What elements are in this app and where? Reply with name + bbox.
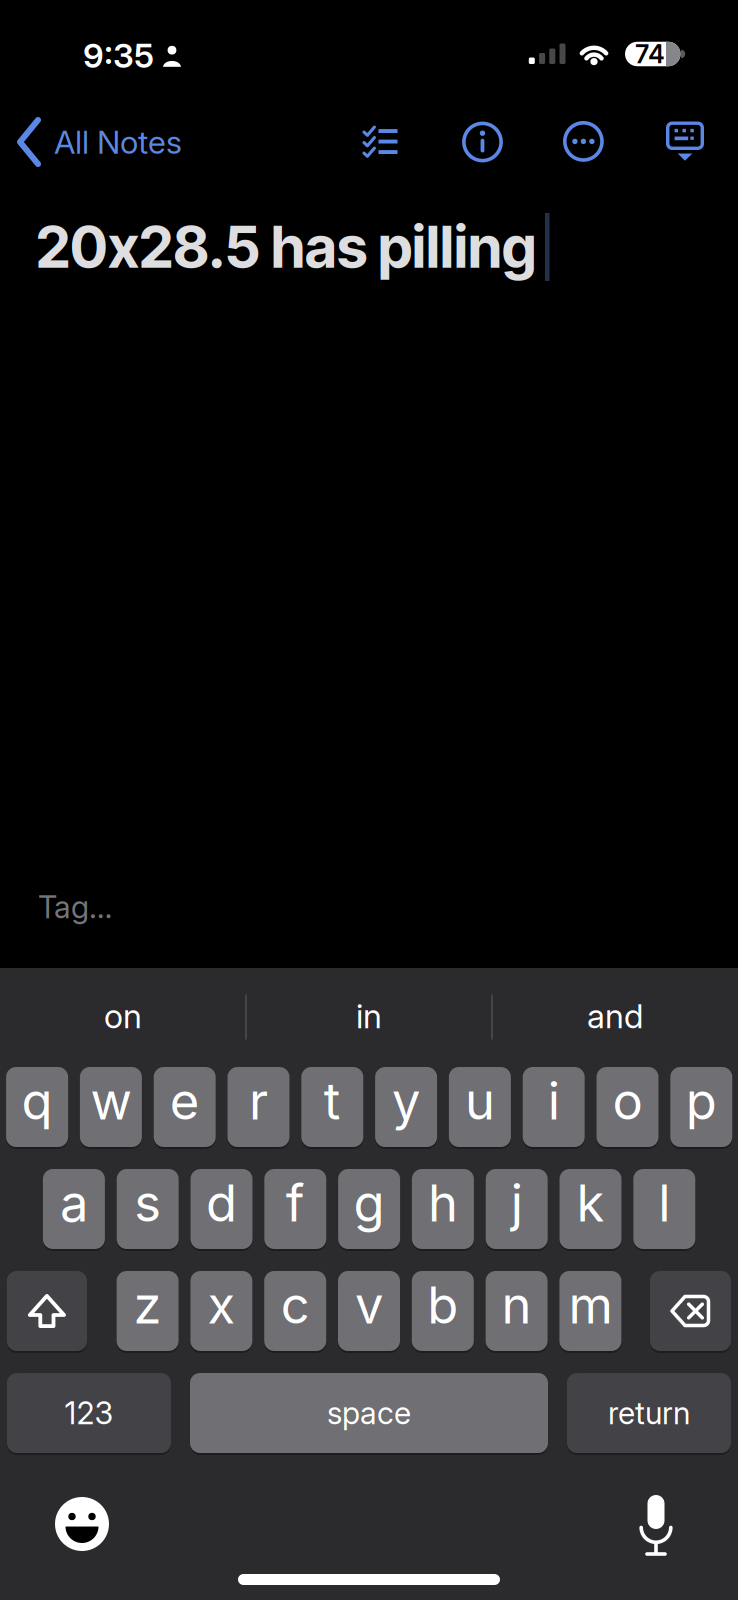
button[interactable]: e [154,1065,216,1149]
button[interactable]: d [190,1167,252,1251]
button[interactable]: z [117,1269,179,1353]
staticText: o [612,1071,642,1131]
staticText: j [511,1173,523,1233]
button[interactable]: k [559,1167,621,1251]
staticText: 20 [36,212,108,282]
staticText: 123 [64,1395,113,1431]
button[interactable]: i [523,1065,585,1149]
button[interactable]: space [190,1371,548,1455]
staticText: n [502,1275,532,1335]
button[interactable]: r [227,1065,289,1149]
staticText: i [548,1071,560,1131]
button[interactable]: a [43,1167,105,1251]
button[interactable]: Checklist [363,125,399,157]
button[interactable]: q [6,1065,68,1149]
button[interactable]: m [559,1269,621,1353]
staticText: on [104,996,142,1036]
staticText: a [60,1173,88,1233]
staticText: space [327,1395,411,1431]
button[interactable]: All Notes [16,117,182,167]
button[interactable]: in [249,976,489,1056]
staticText: t [324,1071,341,1131]
button[interactable]: g [338,1167,400,1251]
staticText: 9:35 [83,36,154,75]
button[interactable]: return [567,1371,731,1455]
staticText: l [658,1173,670,1233]
staticText: return [608,1395,690,1431]
staticText: s [134,1173,161,1233]
staticText: d [206,1173,237,1233]
button[interactable]: Shift [7,1269,87,1353]
button[interactable]: o [596,1065,658,1149]
button[interactable]: c [264,1269,326,1353]
button[interactable]: n [486,1269,548,1353]
button[interactable]: on [3,976,243,1056]
button[interactable]: 123 [7,1371,171,1455]
button[interactable]: j [486,1167,548,1251]
staticText: y [392,1071,420,1131]
staticText: p [686,1071,717,1131]
button[interactable]: u [449,1065,511,1149]
button[interactable]: y [375,1065,437,1149]
button[interactable]: l [633,1167,695,1251]
staticText: h [428,1173,458,1233]
staticText: k [576,1173,604,1233]
staticText: 28.5 has pilling [139,212,536,282]
staticText: in [356,996,382,1036]
staticText: q [22,1071,53,1131]
staticText: g [354,1173,385,1233]
staticText: and [587,996,643,1036]
staticText: All Notes [54,123,182,161]
staticText: x [207,1275,235,1335]
button[interactable]: Note info [460,120,504,164]
button[interactable]: Dictation [636,1493,676,1557]
button[interactable]: t [301,1065,363,1149]
staticText: e [170,1071,200,1131]
staticText: r [249,1071,268,1131]
button[interactable]: b [412,1269,474,1353]
staticText: b [427,1275,458,1335]
button[interactable]: h [412,1167,474,1251]
staticText: z [134,1275,162,1335]
staticText: v [355,1275,383,1335]
button[interactable]: x [190,1269,252,1353]
staticText: u [465,1071,495,1131]
button[interactable]: v [338,1269,400,1353]
staticText: w [90,1071,131,1131]
staticText: f [286,1173,305,1233]
button[interactable]: Emoji [54,1496,110,1552]
button[interactable]: f [264,1167,326,1251]
button[interactable]: Dismiss keyboard [666,121,704,161]
staticText: m [568,1275,612,1335]
button[interactable]: Delete [650,1269,731,1353]
button[interactable]: s [117,1167,179,1251]
staticText: c [281,1275,310,1335]
staticText: Tag… [38,889,112,925]
button[interactable]: and [495,976,735,1056]
button[interactable]: p [670,1065,732,1149]
staticText: x [108,212,139,282]
button[interactable]: w [80,1065,142,1149]
button[interactable]: More actions [561,119,605,163]
staticText: 74 [635,39,665,69]
